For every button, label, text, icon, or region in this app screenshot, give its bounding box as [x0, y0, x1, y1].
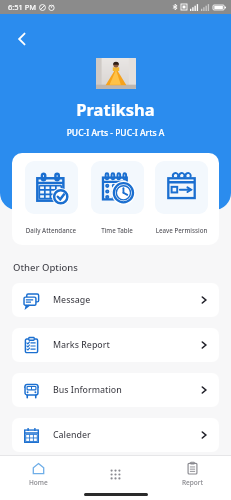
- button[interactable]: Leave Permission: [150, 158, 213, 240]
- button[interactable]: Calender: [12, 418, 219, 452]
- button[interactable]: Time Table: [84, 158, 150, 240]
- button[interactable]: Message: [12, 283, 219, 317]
- staticText: Marks Report: [53, 339, 110, 351]
- staticText: Report: [182, 478, 204, 487]
- staticText: Other Options: [13, 261, 78, 274]
- staticText: Bus Information: [53, 384, 122, 396]
- staticText: Daily Attendance: [18, 226, 84, 234]
- staticText: Time Table: [84, 226, 150, 234]
- button[interactable]: Home: [0, 455, 77, 493]
- staticText: Calender: [53, 429, 91, 441]
- staticText: Pratiksha: [0, 98, 231, 120]
- button[interactable]: Apps: [77, 455, 154, 493]
- staticText: 6:51 PM: [8, 2, 37, 12]
- staticText: Home: [29, 478, 48, 487]
- button[interactable]: Marks Report: [12, 328, 219, 362]
- button[interactable]: Bus Information: [12, 373, 219, 407]
- button[interactable]: Daily Attendance: [18, 158, 84, 240]
- staticText: PUC-I Arts - PUC-I Arts A: [0, 127, 231, 139]
- button[interactable]: Report: [154, 455, 231, 493]
- staticText: Leave Permission: [150, 226, 213, 234]
- staticText: Message: [53, 294, 91, 306]
- button[interactable]: Back: [9, 26, 35, 52]
